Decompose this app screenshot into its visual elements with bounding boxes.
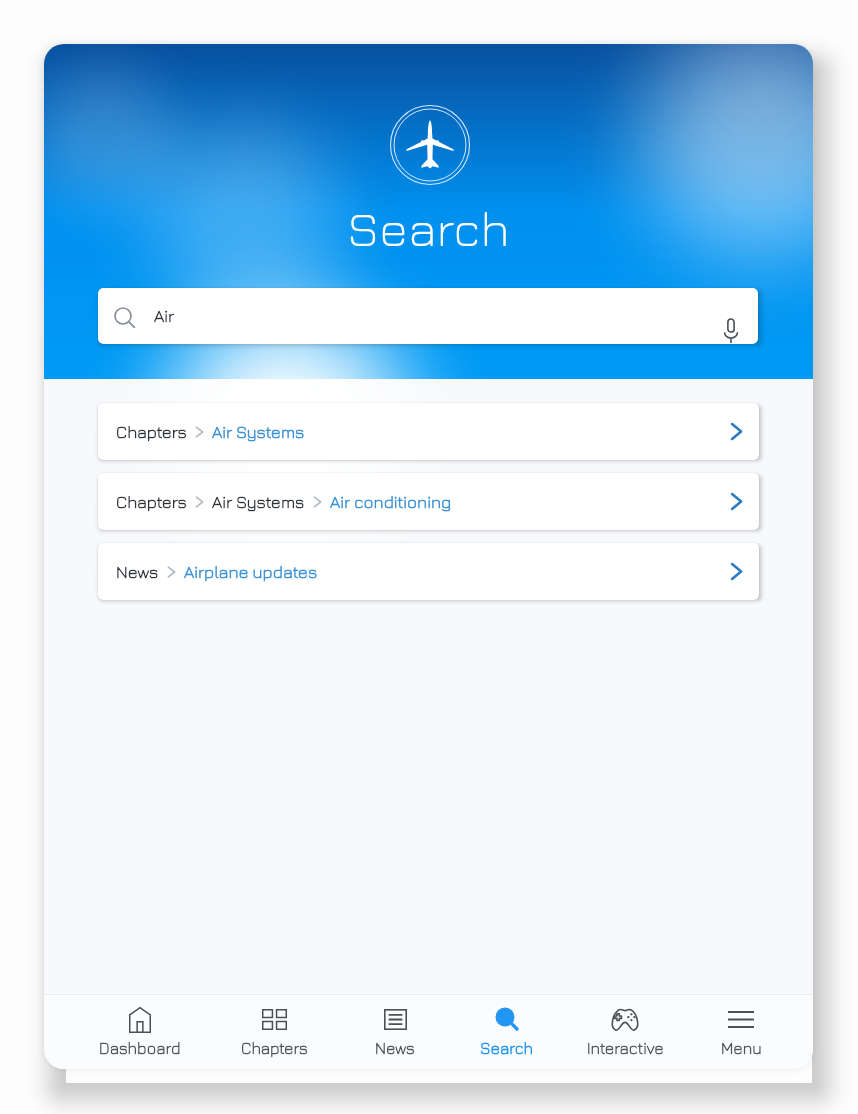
staticText: Chapters [241,1039,308,1058]
staticText: Search [480,1039,534,1058]
staticText: News [116,562,159,582]
staticText: Air Systems [212,422,305,442]
button[interactable]: Dashboard [80,1006,200,1058]
staticText: Interactive [587,1039,664,1058]
button[interactable]: Interactive [565,1006,685,1058]
staticText: Dashboard [99,1039,181,1058]
button[interactable]: Search [447,1006,567,1058]
staticText: Airplane updates [184,562,318,582]
staticText: Menu [721,1039,762,1058]
staticText: Air Systems [212,492,305,512]
button[interactable]: News [335,1006,455,1058]
staticText: Search [347,199,510,257]
other: Open [731,423,742,440]
button[interactable]: Chapters [214,1006,334,1058]
button[interactable]: Chapters [98,473,759,530]
button[interactable]: Air [98,288,758,344]
staticText: Air conditioning [330,492,452,512]
button[interactable]: Menu [681,1006,801,1058]
other: Open [731,493,742,510]
staticText: News [375,1039,415,1058]
staticText: Chapters [116,422,187,442]
staticText: Chapters [116,492,187,512]
button[interactable]: Voice search [718,318,744,344]
button[interactable]: News [98,543,759,600]
other: Open [731,563,742,580]
staticText: Air [154,306,175,326]
button[interactable]: Chapters [98,403,759,460]
